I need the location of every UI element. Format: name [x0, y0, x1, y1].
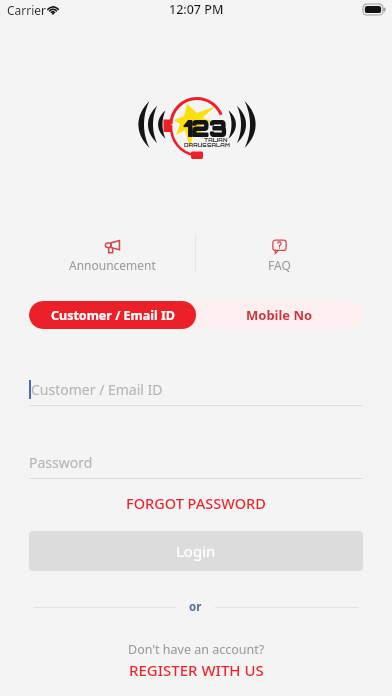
other: Announcement	[104, 239, 122, 254]
staticText: FORGOT PASSWORD	[126, 493, 266, 513]
staticText: Carrier	[7, 2, 47, 18]
staticText: 123	[184, 114, 228, 141]
staticText: 12:07 PM	[169, 1, 224, 18]
staticText: Customer / Email ID	[51, 307, 175, 324]
other: FAQ	[272, 239, 287, 254]
staticText: FAQ	[268, 257, 291, 272]
button[interactable]: Announcement	[30, 234, 195, 272]
staticText: Don't have an account?	[128, 641, 265, 658]
button[interactable]: Mobile No	[196, 301, 363, 329]
staticText: 123	[184, 115, 228, 142]
staticText: REGISTER WITH US	[129, 660, 264, 680]
staticText: Mobile No	[246, 306, 313, 324]
button[interactable]: FAQ	[196, 234, 362, 272]
button[interactable]: Customer / Email ID	[29, 380, 363, 406]
staticText: 123	[183, 114, 227, 141]
button[interactable]: Customer / Email ID	[29, 301, 196, 329]
button[interactable]: Login	[29, 531, 363, 571]
staticText: Login	[176, 541, 216, 561]
button[interactable]: Password	[29, 453, 363, 479]
staticText: Customer / Email ID	[31, 380, 163, 399]
staticText: Password	[29, 453, 93, 472]
button[interactable]: FORGOT PASSWORD	[0, 492, 392, 514]
button[interactable]: REGISTER WITH US	[0, 659, 392, 681]
staticText: DARUSSALAM	[184, 142, 231, 149]
staticText: TALIAN	[204, 137, 228, 144]
staticText: 123	[183, 115, 227, 142]
staticText: Announcement	[69, 257, 156, 272]
staticText: or	[189, 599, 202, 615]
